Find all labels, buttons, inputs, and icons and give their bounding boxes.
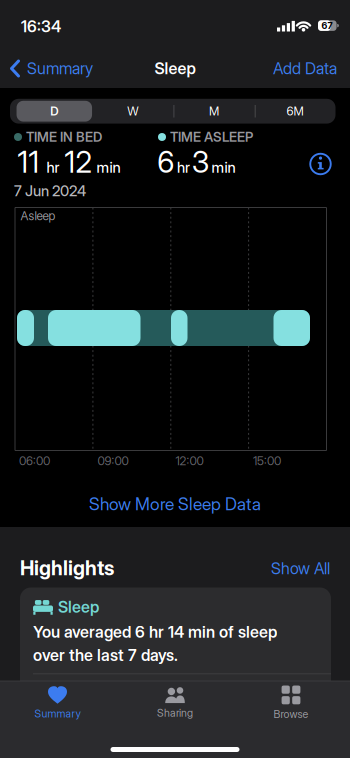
staticText: 15:00 xyxy=(253,454,281,468)
staticText: 7 Jun 2024 xyxy=(14,182,86,200)
staticText: 16:34 xyxy=(21,17,61,36)
staticText: 6M xyxy=(286,104,303,118)
staticText: TIME IN BED xyxy=(26,129,102,145)
staticText: 11 xyxy=(17,145,39,179)
button[interactable]: Sleep xyxy=(20,587,331,706)
staticText: Show More Sleep Data xyxy=(89,494,261,514)
staticText: Summary xyxy=(34,707,80,720)
staticText: 09:00 xyxy=(97,454,128,468)
staticText: hr xyxy=(46,159,59,176)
staticText: 3 xyxy=(192,145,210,179)
button[interactable]: W xyxy=(98,99,168,123)
staticText: hr xyxy=(177,159,190,176)
staticText: TIME ASLEEP xyxy=(170,129,253,145)
button[interactable]: Sharing xyxy=(130,682,220,724)
staticText: M xyxy=(209,104,219,118)
staticText: 6 xyxy=(157,145,174,179)
button[interactable]: Summary xyxy=(12,682,102,724)
staticText: 67 xyxy=(321,20,332,31)
staticText: 12 xyxy=(64,145,91,179)
button[interactable]: Add Data xyxy=(237,59,337,78)
staticText: 06:00 xyxy=(19,454,50,468)
staticText: Sleep xyxy=(154,59,195,78)
button[interactable]: D xyxy=(16,101,92,122)
button[interactable]: Show All xyxy=(230,559,330,578)
staticText: Highlights xyxy=(20,556,114,580)
staticText: Show All xyxy=(271,559,330,578)
staticText: W xyxy=(127,104,138,118)
button[interactable]: About Sleep xyxy=(307,150,334,177)
staticText: D xyxy=(50,104,58,118)
staticText: Add Data xyxy=(273,59,337,78)
button[interactable]: Show More Sleep Data xyxy=(89,494,261,514)
staticText: Sharing xyxy=(157,707,193,719)
staticText: Summary xyxy=(27,59,93,78)
button[interactable]: Summary xyxy=(10,59,120,78)
staticText: You averaged 6 hr 14 min of sleep over t… xyxy=(33,622,277,665)
staticText: Browse xyxy=(273,708,308,720)
staticText: Sleep xyxy=(58,598,99,616)
button[interactable]: 6M xyxy=(260,99,330,123)
staticText: Asleep xyxy=(20,209,55,223)
button[interactable]: Browse xyxy=(246,682,336,724)
staticText: min xyxy=(96,159,120,176)
staticText: min xyxy=(211,159,235,176)
button[interactable]: M xyxy=(179,99,249,123)
staticText: 12:00 xyxy=(175,454,203,468)
